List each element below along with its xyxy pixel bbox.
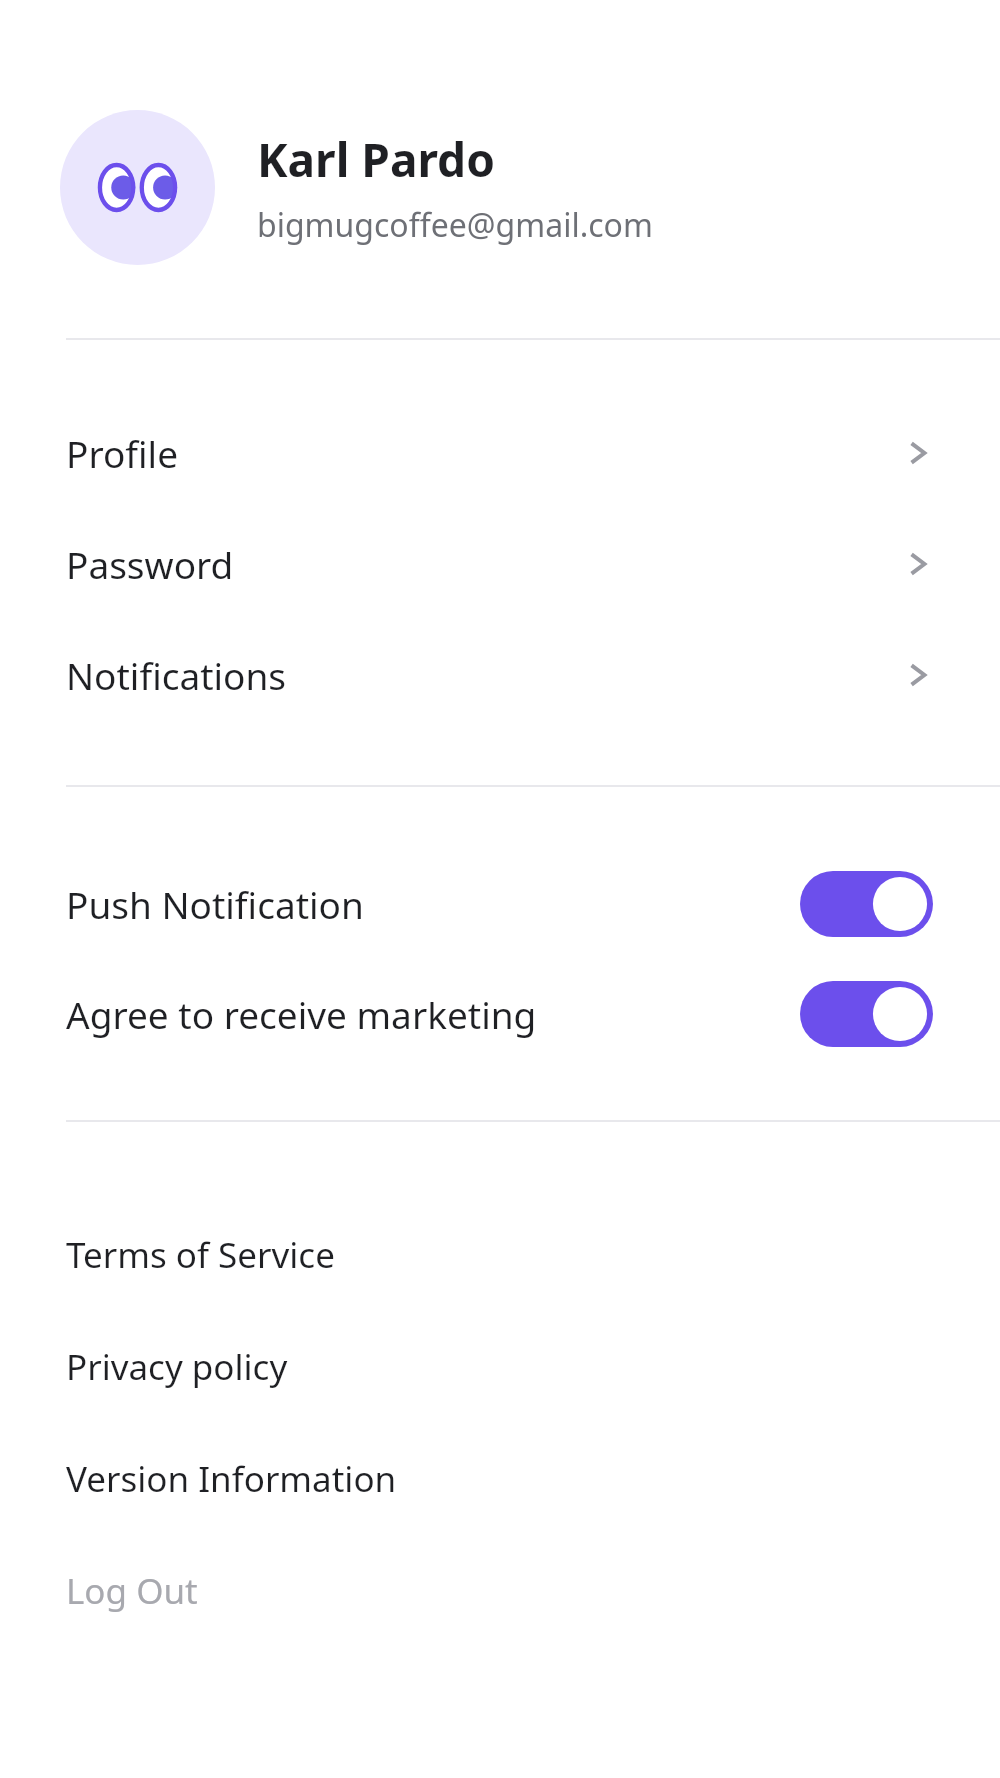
button[interactable]: Profile	[0, 397, 1000, 508]
button[interactable]: Toggle on	[800, 981, 933, 1047]
button[interactable]: Notifications	[0, 619, 1000, 730]
button[interactable]: Version Information	[0, 1423, 1000, 1535]
staticText: Privacy policy	[66, 1343, 288, 1391]
other: Open	[898, 544, 938, 584]
button[interactable]: Agree to receive marketing	[0, 959, 1000, 1069]
button[interactable]: Privacy policy	[0, 1311, 1000, 1423]
other: Open	[898, 433, 938, 473]
other: Open	[898, 655, 938, 695]
staticText: Push Notification	[66, 879, 800, 929]
staticText: Log Out	[66, 1567, 198, 1615]
staticText: bigmugcoffee@gmail.com	[257, 203, 653, 247]
staticText: Terms of Service	[66, 1231, 335, 1279]
button[interactable]: Password	[0, 508, 1000, 619]
button[interactable]: Toggle on	[800, 871, 933, 937]
staticText: Password	[66, 539, 898, 589]
staticText: Version Information	[66, 1455, 397, 1503]
button[interactable]: Terms of Service	[0, 1199, 1000, 1311]
staticText: Profile	[66, 428, 898, 478]
button[interactable]: Karl Pardo	[0, 110, 1000, 265]
button[interactable]: Push Notification	[0, 849, 1000, 959]
staticText: Agree to receive marketing	[66, 989, 800, 1039]
staticText: Karl Pardo	[257, 128, 495, 191]
staticText: Notifications	[66, 650, 898, 700]
button[interactable]: Log Out	[0, 1535, 1000, 1647]
